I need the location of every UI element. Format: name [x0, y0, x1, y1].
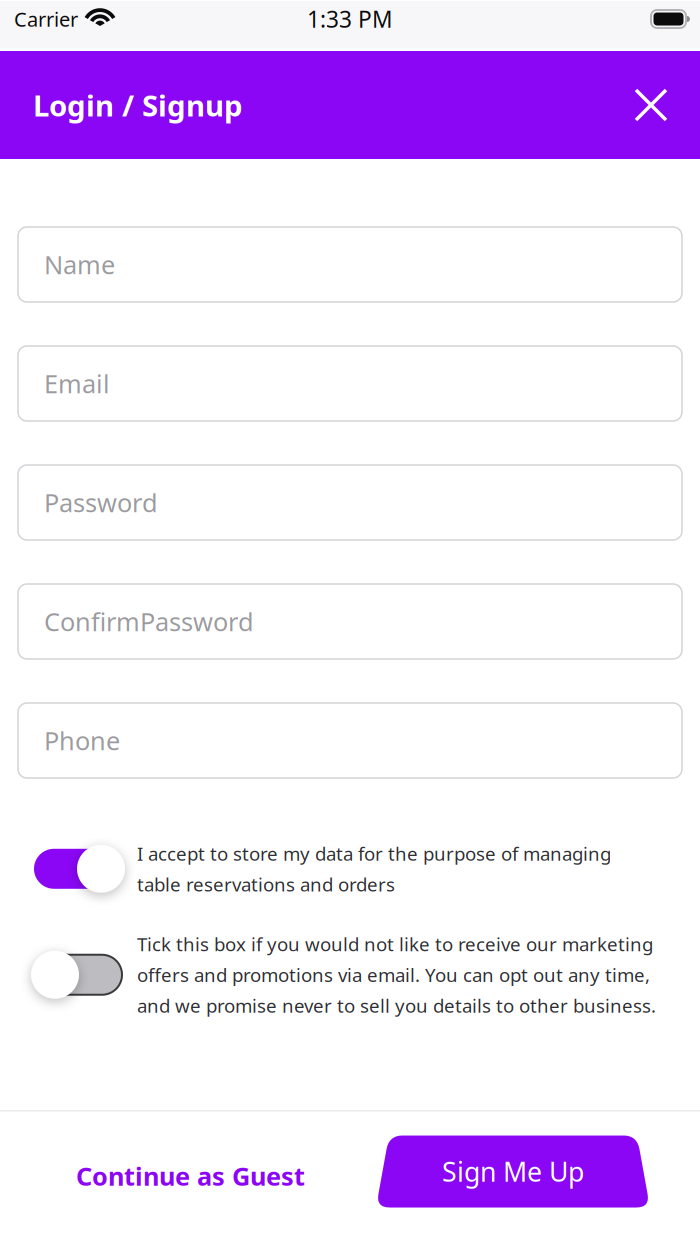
staticText: Email	[44, 367, 110, 400]
button[interactable]: Continue as Guest	[54, 1135, 327, 1207]
button[interactable]: ConfirmPassword	[0, 584, 700, 659]
button[interactable]: Opt out of marketing email	[31, 951, 125, 999]
staticText: Tick this box if you would not like to r…	[137, 932, 656, 1018]
staticText: Sign Me Up	[442, 1154, 584, 1189]
staticText: Name	[44, 248, 115, 281]
staticText: I accept to store my data for the purpos…	[137, 841, 611, 897]
button[interactable]: Sign Me Up	[376, 1135, 650, 1207]
button[interactable]: I accept to store my data	[31, 845, 125, 893]
staticText: Phone	[44, 724, 120, 757]
staticText: Login / Signup	[33, 85, 243, 124]
staticText: Password	[44, 486, 158, 519]
staticText: Continue as Guest	[76, 1159, 305, 1193]
staticText: ConfirmPassword	[44, 605, 254, 638]
staticText: Carrier	[14, 6, 78, 32]
button[interactable]: Password	[0, 465, 700, 540]
button[interactable]: Email	[0, 346, 700, 421]
staticText: 1:33 PM	[307, 4, 393, 34]
button[interactable]: Close	[623, 77, 679, 133]
button[interactable]: Phone	[0, 703, 700, 778]
button[interactable]: Name	[0, 227, 700, 302]
